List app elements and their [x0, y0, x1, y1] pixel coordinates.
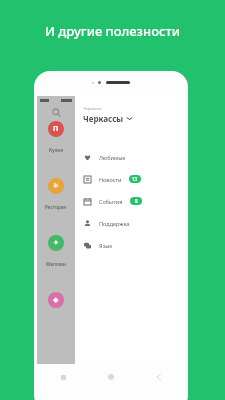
staticText: Кухня [49, 147, 63, 153]
button[interactable]: Новости [83, 168, 185, 190]
staticText: Ресторан [45, 204, 67, 210]
staticText: Любимые [99, 154, 126, 161]
staticText: Язык [99, 242, 113, 249]
button[interactable]: События [83, 190, 185, 212]
staticText: Магазин [46, 261, 67, 267]
button[interactable]: Черкассы [83, 113, 132, 124]
button[interactable]: Язык [83, 234, 185, 256]
staticText: 13 [132, 176, 138, 182]
button[interactable]: Любимые [83, 146, 185, 168]
button[interactable]: Recents [56, 370, 70, 384]
staticText: ◆ [53, 296, 59, 304]
button[interactable]: Поддержка [83, 212, 185, 234]
button[interactable]: Home [104, 370, 118, 384]
staticText: ✦ [53, 239, 59, 247]
button[interactable]: Back [152, 370, 166, 384]
button[interactable]: ✳ [37, 178, 75, 235]
staticText: П [53, 124, 59, 134]
button[interactable]: ◆ [37, 292, 75, 349]
staticText: Поддержка [99, 220, 130, 227]
staticText: Новости [99, 176, 122, 183]
button[interactable]: ✦ [37, 235, 75, 292]
staticText: Черкассы [83, 106, 102, 111]
button[interactable]: П [37, 121, 75, 178]
staticText: Черкассы [83, 113, 124, 124]
staticText: 8 [135, 198, 138, 204]
staticText: И другие полезности [45, 22, 180, 40]
staticText: ✳ [53, 182, 59, 190]
staticText: События [99, 198, 123, 205]
